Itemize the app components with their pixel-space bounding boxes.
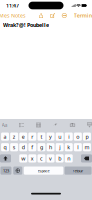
button[interactable]: d	[19, 143, 27, 151]
staticText: o	[76, 133, 79, 140]
staticText: g	[40, 144, 43, 151]
staticText: v	[49, 155, 52, 162]
staticText: u	[58, 133, 61, 140]
button[interactable]: Compose	[49, 11, 57, 20]
staticText: d	[22, 144, 25, 151]
staticText: z	[13, 133, 16, 140]
button[interactable]: Shift	[0, 154, 11, 162]
button[interactable]: Share	[37, 11, 45, 20]
button[interactable]: Terminé	[74, 11, 92, 20]
button[interactable]: e	[19, 132, 27, 141]
staticText: a	[3, 133, 6, 140]
button[interactable]: y	[47, 132, 55, 141]
staticText: Aa	[1, 121, 7, 129]
button[interactable]: f	[28, 143, 36, 151]
button[interactable]: g	[37, 143, 45, 151]
button[interactable]: c	[37, 154, 45, 162]
staticText: s	[13, 144, 16, 151]
button[interactable]: l	[74, 143, 82, 151]
staticText: y	[49, 133, 52, 140]
button[interactable]: w	[19, 154, 27, 162]
button[interactable]: m	[83, 143, 91, 151]
button[interactable]: j	[56, 143, 64, 151]
button[interactable]: More	[60, 11, 68, 20]
button[interactable]: x	[28, 154, 36, 162]
button[interactable]: r	[28, 132, 36, 141]
button[interactable]: espace	[24, 166, 63, 175]
button[interactable]: Next keyboard	[13, 166, 22, 175]
staticText: k	[67, 144, 70, 151]
button[interactable]: q	[1, 143, 9, 151]
staticText: m	[84, 144, 89, 151]
button[interactable]: z	[10, 132, 18, 141]
staticText: retour	[73, 168, 84, 173]
button[interactable]: Format	[0, 120, 9, 129]
button[interactable]: Table	[34, 120, 43, 129]
staticText: w	[21, 155, 25, 162]
staticText: h	[49, 144, 52, 151]
staticText: j	[59, 144, 60, 151]
staticText: 11:47	[6, 2, 19, 9]
button[interactable]: h	[47, 143, 55, 151]
staticText: x	[31, 155, 34, 162]
staticText: Wrak?@! Poubelle	[3, 21, 49, 29]
button[interactable]: n	[65, 154, 73, 162]
button[interactable]: s	[10, 143, 18, 151]
button[interactable]: Backspace	[81, 154, 92, 162]
staticText: n	[67, 155, 70, 162]
button[interactable]: 123	[0, 166, 11, 175]
button[interactable]: u	[56, 132, 64, 141]
staticText: Mes Notes	[0, 12, 26, 19]
button[interactable]: a	[1, 132, 9, 141]
button[interactable]: Checklist	[17, 120, 26, 129]
staticText: e	[22, 133, 25, 140]
staticText: r	[31, 133, 33, 140]
button[interactable]: retour	[65, 166, 92, 175]
staticText: f	[31, 144, 33, 151]
button[interactable]: t	[37, 132, 45, 141]
staticText: p	[85, 133, 88, 140]
button[interactable]: Attach	[51, 120, 60, 129]
button[interactable]: v	[47, 154, 55, 162]
staticText: b	[58, 155, 61, 162]
button[interactable]: p	[83, 132, 91, 141]
button[interactable]: i	[65, 132, 73, 141]
staticText: t	[40, 133, 42, 140]
staticText: espace	[38, 168, 50, 173]
staticText: 123	[3, 168, 9, 173]
button[interactable]: k	[65, 143, 73, 151]
staticText: i	[68, 133, 69, 140]
staticText: c	[40, 155, 43, 162]
staticText: Terminé	[74, 12, 92, 19]
button[interactable]: o	[74, 132, 82, 141]
button[interactable]: b	[56, 154, 64, 162]
button[interactable]: Camera	[68, 120, 77, 129]
button[interactable]: Hide keyboard	[85, 120, 92, 129]
staticText: q	[3, 144, 6, 151]
button[interactable]: Mes Notes	[0, 11, 26, 20]
staticText: l	[77, 144, 78, 151]
